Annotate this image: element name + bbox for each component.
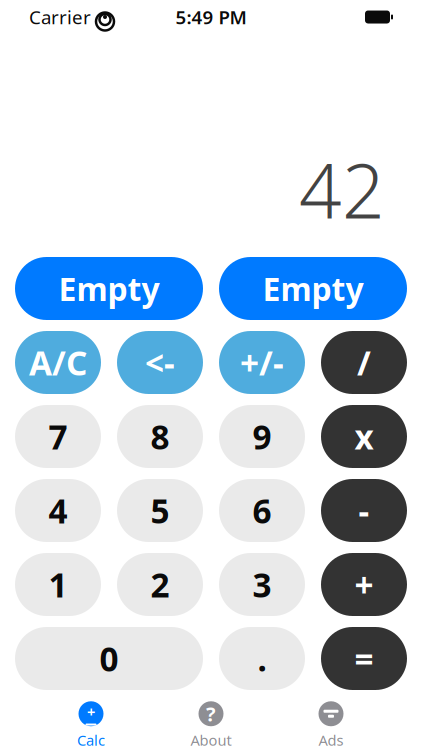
staticText: 5:49 PM <box>175 5 246 29</box>
button[interactable]: <- <box>117 331 203 394</box>
staticText: 42 <box>299 140 385 239</box>
staticText: 9 <box>252 414 271 459</box>
staticText: Calc <box>77 730 105 750</box>
button[interactable]: ? <box>151 701 271 749</box>
button[interactable]: - <box>321 479 407 542</box>
button[interactable]: 4 <box>15 479 101 542</box>
button[interactable]: / <box>321 331 407 394</box>
staticText: x <box>354 414 373 459</box>
staticText: 0 <box>99 636 118 681</box>
staticText: . <box>257 636 266 681</box>
staticText: 2 <box>150 562 169 607</box>
button[interactable]: +/- <box>219 331 305 394</box>
staticText: 3 <box>252 562 271 607</box>
button[interactable]: + <box>31 701 151 749</box>
button[interactable]: 3 <box>219 553 305 616</box>
staticText: Carrier <box>29 5 91 29</box>
button[interactable]: A/C <box>15 331 101 394</box>
button[interactable]: + <box>321 553 407 616</box>
staticText: + <box>87 702 95 721</box>
staticText: Ads <box>318 730 343 750</box>
staticText: <- <box>145 340 175 385</box>
button[interactable]: = <box>321 627 407 690</box>
staticText: Empty <box>262 267 363 310</box>
staticText: / <box>357 340 371 385</box>
button[interactable]: Empty <box>219 257 407 320</box>
staticText: ? <box>206 700 216 727</box>
staticText: +/- <box>240 340 284 385</box>
staticText: - <box>358 488 369 533</box>
button[interactable]: 7 <box>15 405 101 468</box>
staticText: = <box>354 636 373 681</box>
staticText: A/C <box>29 340 87 385</box>
button[interactable]: 1 <box>15 553 101 616</box>
button[interactable]: 6 <box>219 479 305 542</box>
button[interactable]: . <box>219 627 305 690</box>
staticText: + <box>354 562 373 607</box>
button[interactable]: 8 <box>117 405 203 468</box>
button[interactable]: 0 <box>15 627 203 690</box>
staticText: 7 <box>48 414 67 459</box>
button[interactable]: Ads <box>271 701 391 749</box>
staticText: Empty <box>58 267 159 310</box>
staticText: About <box>190 730 231 750</box>
staticText: 6 <box>252 488 271 533</box>
staticText: 4 <box>48 488 67 533</box>
button[interactable]: Empty <box>15 257 203 320</box>
staticText: 8 <box>150 414 169 459</box>
staticText: 1 <box>48 562 67 607</box>
button[interactable]: 2 <box>117 553 203 616</box>
button[interactable]: 5 <box>117 479 203 542</box>
button[interactable]: x <box>321 405 407 468</box>
button[interactable]: 9 <box>219 405 305 468</box>
staticText: 5 <box>150 488 169 533</box>
